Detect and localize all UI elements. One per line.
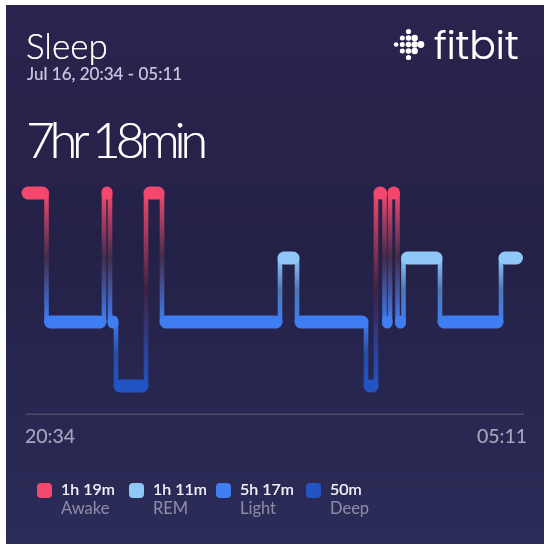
- button[interactable]: 1h 19m: [37, 479, 116, 518]
- staticText: Light: [240, 498, 277, 518]
- staticText: Deep: [330, 498, 370, 518]
- staticText: 05:11: [477, 424, 528, 447]
- staticText: fitbit: [434, 18, 519, 73]
- staticText: 7hr 18min: [26, 109, 203, 169]
- staticText: 1h 11m: [153, 479, 208, 498]
- staticText: 1h 19m: [61, 479, 116, 498]
- staticText: 50m: [330, 479, 362, 498]
- button[interactable]: 50m: [306, 479, 370, 518]
- button[interactable]: 5h 17m: [216, 479, 295, 518]
- staticText: Jul 16, 20:34 - 05:11: [27, 63, 183, 83]
- staticText: REM: [153, 498, 189, 518]
- staticText: Awake: [61, 498, 110, 518]
- staticText: Sleep: [26, 24, 108, 66]
- staticText: 20:34: [25, 424, 76, 447]
- staticText: 5h 17m: [240, 479, 295, 498]
- button[interactable]: 1h 11m: [129, 479, 208, 518]
